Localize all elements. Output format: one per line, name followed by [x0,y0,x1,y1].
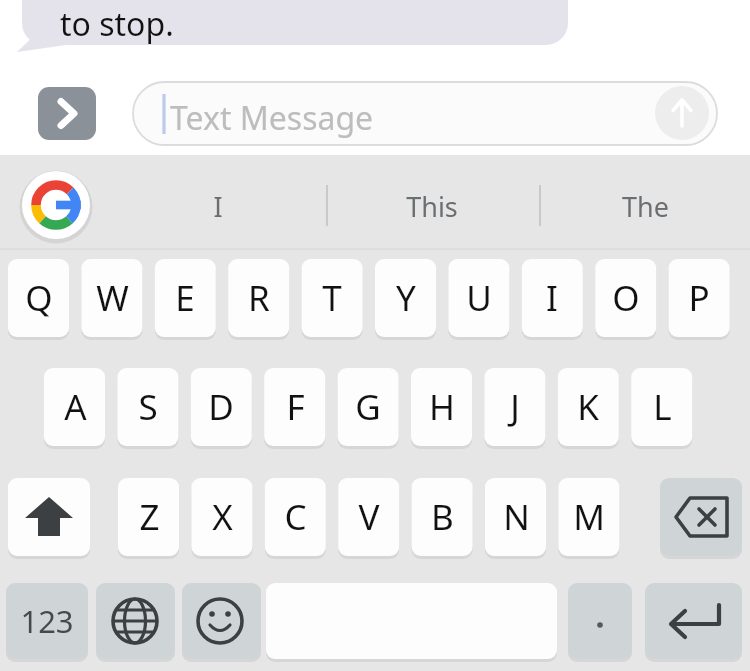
staticText: Y [396,274,416,322]
button[interactable] [264,368,325,446]
staticText: This [406,188,458,225]
button[interactable] [118,478,179,556]
button[interactable]: Period [568,583,632,659]
button[interactable]: Numbers [6,583,88,659]
staticText: V [358,493,380,541]
staticText: I [546,274,558,322]
staticText: T [322,274,342,322]
button[interactable] [191,368,252,446]
button[interactable] [411,368,472,446]
button[interactable] [631,368,692,446]
staticText: M [573,493,605,541]
staticText: W [96,274,129,322]
staticText: to stop. [60,2,174,46]
button[interactable] [338,478,399,556]
button[interactable] [228,259,289,337]
button[interactable]: Emoji [182,583,261,659]
button[interactable] [412,478,473,556]
staticText: I [213,188,223,225]
button[interactable] [595,259,656,337]
button[interactable]: Google Assistant [22,171,90,239]
staticText: Text Message [170,96,374,140]
staticText: K [577,383,599,431]
button[interactable]: Suggestion I [100,170,327,240]
staticText: 123 [20,600,74,642]
button[interactable]: Enter [645,583,742,659]
staticText: J [510,383,520,431]
staticText: E [175,274,195,322]
button[interactable] [44,368,105,446]
button[interactable] [375,259,436,337]
button[interactable] [448,259,509,337]
staticText: C [284,493,307,541]
button[interactable] [558,478,619,556]
button[interactable] [8,259,69,337]
button[interactable] [81,259,142,337]
staticText: Z [139,493,160,541]
staticText: D [208,383,234,431]
button[interactable] [338,368,399,446]
button[interactable]: Expand options [38,87,96,140]
staticText: S [138,383,158,431]
staticText: H [429,383,455,431]
button[interactable] [117,368,178,446]
button[interactable] [265,478,326,556]
button[interactable] [191,478,252,556]
staticText: R [248,274,270,322]
button[interactable] [484,368,545,446]
button[interactable]: Shift [8,478,90,556]
staticText: O [612,274,640,322]
staticText: N [503,493,530,541]
button[interactable]: Suggestion The [541,170,750,240]
button[interactable] [485,478,546,556]
staticText: U [466,274,492,322]
button[interactable]: Backspace [660,478,742,556]
button[interactable] [558,368,619,446]
staticText: G [355,383,381,431]
staticText: F [286,383,305,431]
staticText: X [212,493,233,541]
button[interactable]: Change language [96,583,175,659]
staticText: B [431,493,454,541]
staticText: A [64,383,87,431]
button[interactable] [669,259,730,337]
button[interactable] [155,259,216,337]
button[interactable]: Text message input [133,82,717,145]
button[interactable] [522,259,583,337]
staticText: L [653,383,672,431]
button[interactable] [302,259,363,337]
staticText: Q [25,274,53,322]
button[interactable]: Suggestion This [328,170,540,240]
staticText: P [688,274,710,322]
staticText: The [622,188,669,225]
button[interactable]: Send [655,86,709,140]
